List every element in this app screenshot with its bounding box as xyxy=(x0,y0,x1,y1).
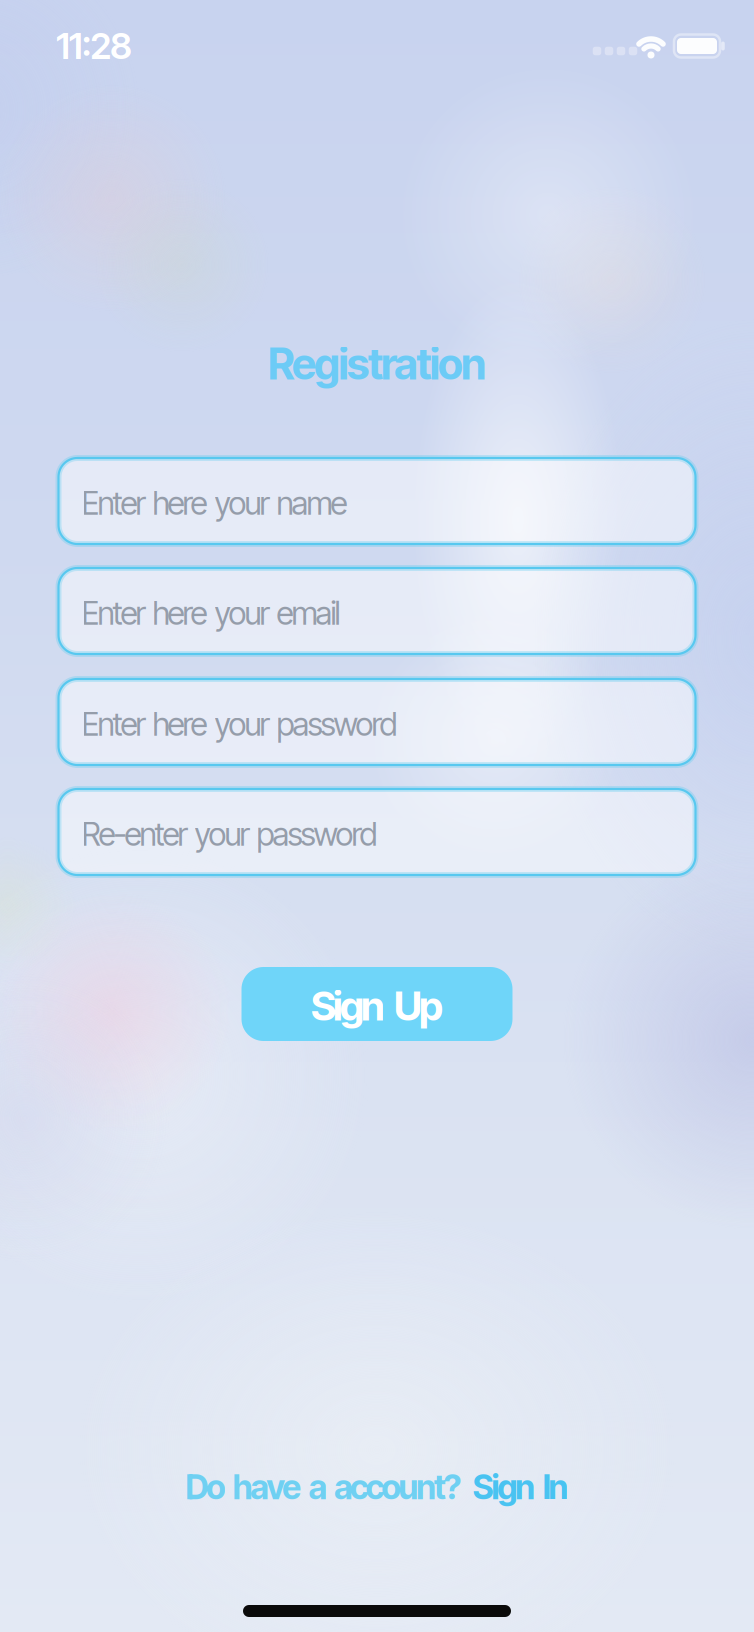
staticText: Re-enter xyxy=(81,815,187,853)
staticText: Sign xyxy=(473,1467,535,1507)
staticText: account? xyxy=(334,1467,462,1507)
staticText: Enter xyxy=(81,484,145,522)
staticText: name xyxy=(276,484,347,522)
staticText: your xyxy=(214,594,269,632)
staticText: have xyxy=(233,1467,301,1507)
staticText: Sign xyxy=(311,982,385,1030)
staticText: here xyxy=(152,594,207,632)
staticText: Up xyxy=(394,982,443,1030)
staticText: Enter xyxy=(81,705,145,743)
staticText: here xyxy=(152,484,207,522)
staticText: Registration xyxy=(268,339,486,389)
staticText: your xyxy=(214,484,269,522)
button[interactable]: Enter xyxy=(58,568,695,654)
staticText: password xyxy=(256,815,377,853)
staticText: email xyxy=(276,594,340,632)
staticText: your xyxy=(214,705,269,743)
staticText: In xyxy=(543,1467,568,1507)
staticText: 11:28 xyxy=(56,25,132,67)
button[interactable]: Sign xyxy=(241,967,512,1041)
staticText: password xyxy=(276,705,397,743)
button[interactable]: Enter xyxy=(58,679,695,765)
staticText: here xyxy=(152,705,207,743)
staticText: a xyxy=(309,1467,327,1507)
button[interactable]: Enter xyxy=(58,458,695,544)
staticText: your xyxy=(194,815,249,853)
button[interactable]: Sign xyxy=(473,1467,568,1507)
button[interactable]: Re-enter xyxy=(58,789,695,875)
staticText: Enter xyxy=(81,594,145,632)
staticText: Do xyxy=(185,1467,225,1507)
